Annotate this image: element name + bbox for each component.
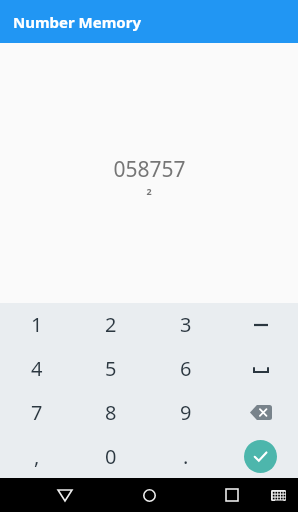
button[interactable]: Minus <box>223 303 298 346</box>
staticText: 9 <box>180 399 192 426</box>
staticText: 5 <box>105 355 117 382</box>
button[interactable]: 2 <box>74 303 148 346</box>
button[interactable]: 8 <box>74 390 148 434</box>
button[interactable]: 1 <box>0 303 74 346</box>
button[interactable]: Back <box>52 482 78 508</box>
staticText: 2 <box>105 311 117 338</box>
button[interactable]: 4 <box>0 346 74 390</box>
button[interactable]: 0 <box>74 434 148 478</box>
button[interactable]: Change keyboard <box>266 483 290 507</box>
staticText: 0 <box>105 443 117 470</box>
button[interactable]: 3 <box>148 303 223 346</box>
button[interactable]: . <box>148 434 223 478</box>
staticText: 4 <box>31 355 43 382</box>
staticText: 2 <box>146 185 152 197</box>
staticText: 6 <box>180 355 192 382</box>
button[interactable]: Home <box>136 482 162 508</box>
staticText: 7 <box>31 399 43 426</box>
staticText: Number Memory <box>13 12 141 32</box>
button[interactable]: 9 <box>148 390 223 434</box>
staticText: 058757 <box>113 155 186 184</box>
button[interactable]: Done <box>223 434 298 478</box>
staticText: 8 <box>105 399 117 426</box>
button[interactable]: Space <box>223 346 298 390</box>
staticText: 1 <box>31 311 43 338</box>
staticText: , <box>34 443 40 470</box>
button[interactable]: Recents <box>219 482 245 508</box>
button[interactable]: , <box>0 434 74 478</box>
staticText: 3 <box>180 311 192 338</box>
button[interactable]: 5 <box>74 346 148 390</box>
button[interactable]: Backspace <box>223 390 298 434</box>
button[interactable]: 7 <box>0 390 74 434</box>
staticText: . <box>183 443 189 470</box>
button[interactable]: 6 <box>148 346 223 390</box>
